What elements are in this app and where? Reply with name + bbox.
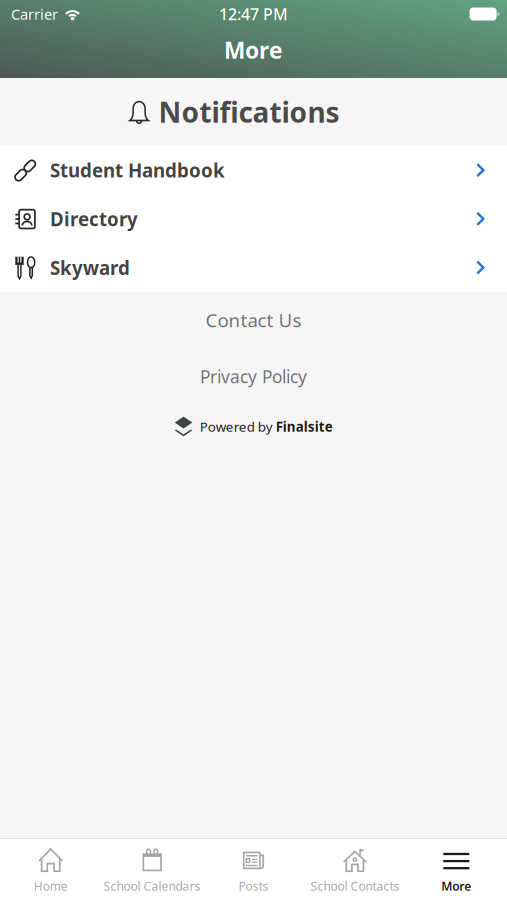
staticText: Skyward: [50, 255, 130, 280]
staticText: Contact Us: [205, 308, 301, 332]
button[interactable]: Skyward: [0, 243, 507, 292]
button[interactable]: Contact Us: [0, 292, 507, 348]
staticText: More: [441, 878, 471, 894]
staticText: More: [224, 35, 283, 65]
staticText: Powered by Finalsite: [200, 418, 333, 435]
staticText: 12:47 PM: [219, 3, 288, 25]
button[interactable]: Privacy Policy: [0, 348, 507, 405]
button[interactable]: Powered by Finalsite: [0, 405, 507, 448]
staticText: Directory: [50, 207, 138, 231]
staticText: School Contacts: [310, 878, 399, 894]
staticText: Home: [34, 878, 68, 894]
button[interactable]: Home: [0, 839, 101, 900]
staticText: Privacy Policy: [200, 365, 307, 388]
button[interactable]: Student Handbook: [0, 146, 507, 195]
button[interactable]: School Calendars: [101, 839, 203, 900]
staticText: School Calendars: [104, 878, 201, 894]
staticText: Carrier: [11, 4, 58, 24]
button[interactable]: Posts: [203, 839, 304, 900]
staticText: Student Handbook: [50, 158, 225, 183]
button[interactable]: School Contacts: [304, 839, 406, 900]
staticText: Notifications: [158, 93, 339, 131]
button[interactable]: More: [406, 839, 507, 900]
staticText: Posts: [238, 878, 268, 894]
button[interactable]: Directory: [0, 195, 507, 243]
